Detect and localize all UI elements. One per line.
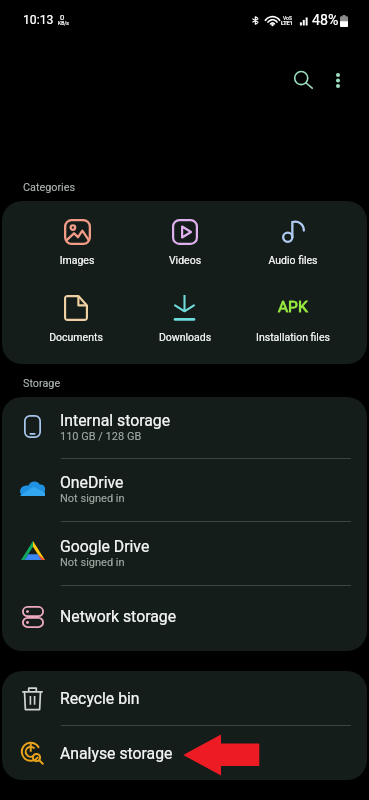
button[interactable]: Search — [281, 58, 325, 102]
button[interactable]: Analyse storage — [2, 726, 367, 780]
staticText: 10:13 — [23, 13, 54, 27]
staticText: Internal storage — [60, 411, 171, 430]
button[interactable]: Recycle bin — [2, 671, 367, 725]
button[interactable]: Google Drive — [2, 522, 367, 585]
staticText: Videos — [131, 254, 239, 266]
staticText: Analyse storage — [60, 744, 173, 763]
staticText: 0 — [60, 13, 65, 22]
button[interactable]: Images — [23, 208, 131, 268]
staticText: Audio files — [239, 254, 347, 266]
staticText: OneDrive — [60, 473, 124, 492]
button[interactable]: Videos — [131, 208, 239, 268]
button[interactable]: APK — [239, 283, 347, 343]
staticText: Google Drive — [60, 537, 150, 556]
staticText: 110 GB / 128 GB — [60, 430, 142, 443]
staticText: Not signed in — [60, 492, 125, 505]
staticText: 48% — [312, 12, 339, 29]
button[interactable]: Network storage — [2, 586, 367, 651]
button[interactable]: Documents — [22, 284, 130, 344]
button[interactable]: OneDrive — [2, 459, 367, 521]
staticText: KB/s — [58, 20, 69, 26]
button[interactable]: Audio files — [239, 207, 347, 267]
staticText: Categories — [23, 181, 75, 194]
button[interactable]: Downloads — [131, 284, 239, 344]
button[interactable]: More options — [316, 58, 360, 102]
staticText: Images — [23, 254, 131, 266]
staticText: Installation files — [239, 331, 347, 343]
staticText: Not signed in — [60, 556, 125, 569]
staticText: APK — [278, 298, 308, 316]
staticText: Network storage — [60, 607, 177, 626]
staticText: Downloads — [131, 331, 239, 343]
staticText: Storage — [23, 377, 61, 390]
staticText: VoS — [283, 15, 292, 21]
staticText: LTE1 — [281, 20, 293, 26]
staticText: Documents — [22, 331, 130, 343]
staticText: Recycle bin — [60, 689, 140, 708]
button[interactable]: Internal storage — [2, 397, 367, 458]
